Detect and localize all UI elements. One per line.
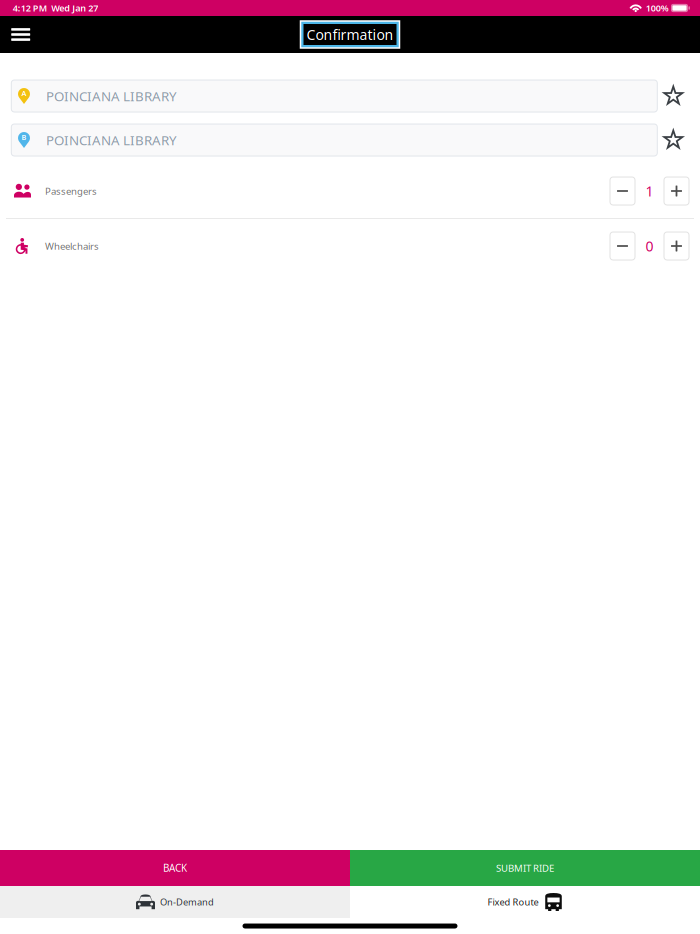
staticText: POINCIANA LIBRARY xyxy=(46,87,177,105)
button[interactable]: Fixed Route xyxy=(350,886,700,918)
button[interactable]: BACK xyxy=(0,850,350,886)
button[interactable]: Increase Passengers xyxy=(664,177,689,205)
staticText: A xyxy=(21,88,26,98)
button[interactable]: A xyxy=(11,80,657,112)
button[interactable]: Favorite xyxy=(657,80,689,112)
button[interactable]: SUBMIT RIDE xyxy=(350,850,700,886)
staticText: B xyxy=(21,132,26,142)
staticText: 1 xyxy=(645,181,653,201)
staticText: 0 xyxy=(645,236,653,256)
button[interactable]: Decrease Passengers xyxy=(610,177,635,205)
button[interactable]: On-Demand xyxy=(0,886,350,918)
staticText: Passengers xyxy=(45,184,97,198)
staticText: Wheelchairs xyxy=(45,239,99,253)
staticText: Fixed Route xyxy=(487,896,538,908)
button[interactable]: B xyxy=(11,124,657,156)
button[interactable]: Favorite xyxy=(657,124,689,156)
staticText: BACK xyxy=(163,861,187,875)
staticText: 100% xyxy=(646,2,669,14)
staticText: 4:12 PM xyxy=(13,2,47,14)
staticText: SUBMIT RIDE xyxy=(496,861,554,875)
staticText: Confirmation xyxy=(306,25,393,44)
button[interactable]: Decrease Wheelchairs xyxy=(610,232,635,260)
button[interactable]: Increase Wheelchairs xyxy=(664,232,689,260)
staticText: POINCIANA LIBRARY xyxy=(46,131,177,149)
button[interactable]: Menu xyxy=(0,16,30,53)
staticText: On-Demand xyxy=(160,896,214,908)
staticText: Wed Jan 27 xyxy=(51,2,98,14)
